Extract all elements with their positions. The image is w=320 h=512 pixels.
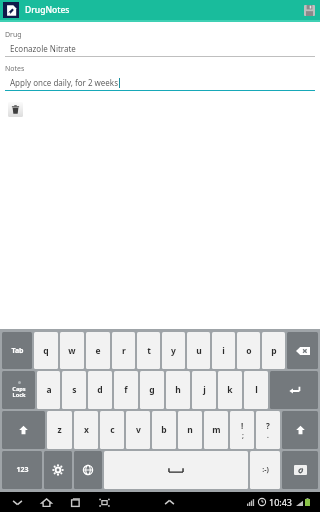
button[interactable]: r (112, 332, 135, 369)
button[interactable]: Language (74, 451, 102, 489)
staticText: t (147, 345, 151, 357)
staticText: ! (241, 420, 244, 431)
staticText: c (110, 424, 115, 436)
button[interactable]: g (140, 371, 164, 409)
button[interactable]: w (60, 332, 84, 369)
button[interactable]: o (237, 332, 260, 369)
staticText: 123 (16, 465, 29, 475)
button[interactable]: m (204, 411, 228, 449)
staticText: e (95, 345, 101, 357)
button[interactable]: s (62, 371, 86, 409)
button[interactable]: d (88, 371, 112, 409)
staticText: m (212, 424, 221, 436)
staticText: :-) (262, 465, 269, 475)
staticText: f (124, 384, 128, 396)
staticText: d (97, 384, 103, 396)
button[interactable]: h (166, 371, 190, 409)
staticText: p (271, 345, 277, 357)
staticText: r (122, 345, 126, 357)
staticText: g (149, 384, 155, 396)
staticText: a (46, 384, 52, 396)
button[interactable]: a (37, 371, 60, 409)
staticText: Drug (5, 30, 22, 40)
staticText: Notes (5, 64, 25, 74)
button[interactable]: j (192, 371, 216, 409)
staticText: o (246, 345, 252, 357)
button[interactable]: App icon (3, 2, 19, 18)
button[interactable]: Home (39, 495, 54, 510)
button[interactable]: Apply once daily, for 2 weeks (5, 77, 315, 90)
button[interactable]: Attach (282, 451, 318, 489)
button[interactable]: Caps Lock (2, 371, 35, 409)
staticText: k (227, 384, 233, 396)
button[interactable]: Econazole Nitrate (5, 43, 315, 56)
button[interactable]: c (100, 411, 124, 449)
staticText: Caps Lock (12, 385, 26, 399)
button[interactable]: Back (10, 495, 25, 510)
staticText: h (175, 384, 181, 396)
button[interactable]: u (187, 332, 210, 369)
button[interactable]: Tab (2, 332, 32, 369)
staticText: n (187, 424, 193, 436)
button[interactable]: z (47, 411, 72, 449)
button[interactable]: f (114, 371, 138, 409)
button[interactable]: Save (302, 3, 316, 17)
staticText: ? (266, 420, 270, 431)
button[interactable]: l (244, 371, 268, 409)
staticText: w (68, 345, 76, 357)
button[interactable]: t (137, 332, 160, 369)
staticText: l (255, 384, 258, 396)
staticText: x (84, 424, 89, 436)
staticText: s (72, 384, 77, 396)
button[interactable]: Space (104, 451, 248, 489)
button[interactable]: Shift (282, 411, 318, 449)
button[interactable]: k (218, 371, 242, 409)
button[interactable]: Screenshot (97, 495, 112, 510)
staticText: v (136, 424, 141, 436)
button[interactable]: b (152, 411, 176, 449)
staticText: b (161, 424, 167, 436)
button[interactable]: q (34, 332, 58, 369)
staticText: z (57, 424, 62, 436)
button[interactable]: ? (256, 411, 280, 449)
button[interactable]: x (74, 411, 98, 449)
staticText: q (43, 345, 49, 357)
button[interactable]: ! (230, 411, 254, 449)
button[interactable]: v (126, 411, 150, 449)
button[interactable]: Shift (2, 411, 45, 449)
staticText: j (203, 384, 206, 396)
button[interactable]: Delete (6, 100, 24, 118)
staticText: y (171, 345, 176, 357)
button[interactable]: Enter (270, 371, 318, 409)
button[interactable]: Settings (44, 451, 72, 489)
button[interactable]: Recents (68, 495, 83, 510)
button[interactable]: n (178, 411, 202, 449)
button[interactable]: i (212, 332, 235, 369)
staticText: Tab (11, 346, 24, 356)
staticText: . (267, 431, 269, 440)
staticText: Econazole Nitrate (10, 43, 76, 54)
button[interactable]: Backspace (287, 332, 318, 369)
staticText: DrugNotes (25, 4, 70, 16)
staticText: i (222, 345, 225, 357)
button[interactable]: p (262, 332, 285, 369)
staticText: 10:43 (269, 496, 293, 508)
staticText: ; (242, 431, 244, 440)
button[interactable]: y (162, 332, 185, 369)
staticText: Apply once daily, for 2 weeks (10, 77, 118, 88)
staticText: u (196, 345, 202, 357)
button[interactable]: e (86, 332, 110, 369)
button[interactable]: 123 (2, 451, 42, 489)
button[interactable]: :-) (250, 451, 280, 489)
